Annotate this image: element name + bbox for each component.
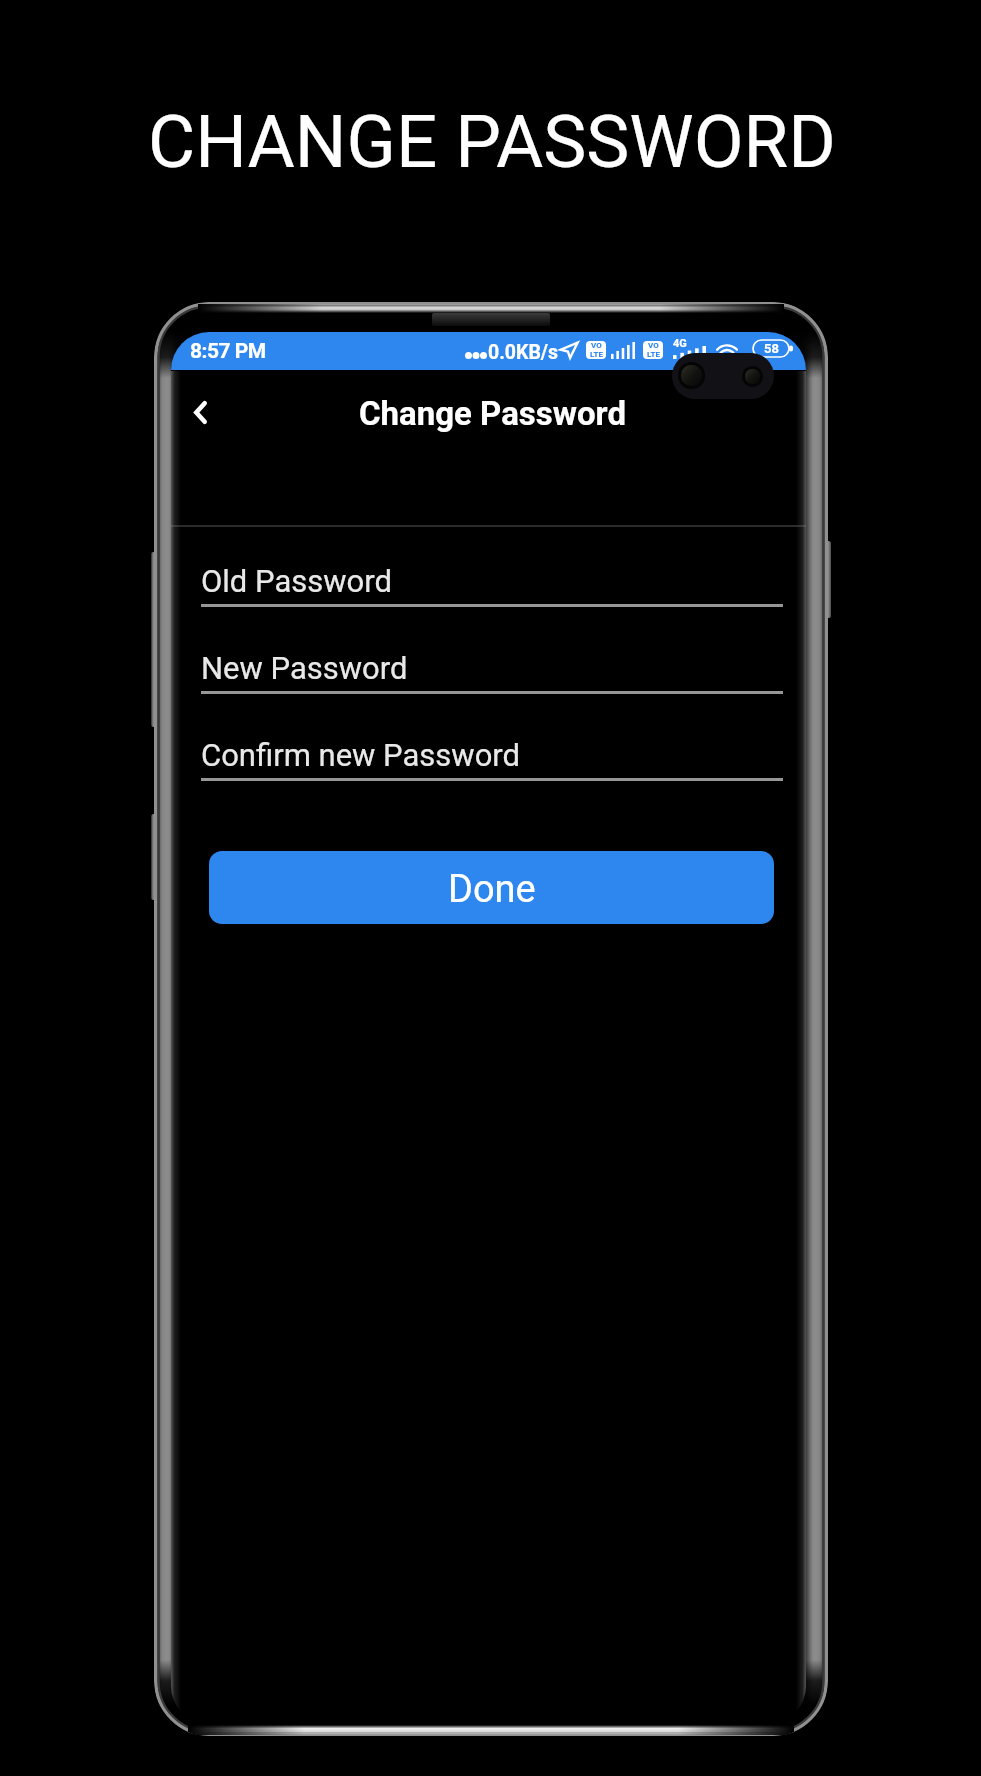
staticText: VO: [648, 341, 659, 350]
button[interactable]: Back: [173, 376, 237, 448]
staticText: 4G: [673, 337, 687, 350]
button[interactable]: New Password: [201, 650, 783, 694]
staticText: LTE: [647, 350, 660, 359]
staticText: LTE: [590, 350, 603, 359]
staticText: 8:57 PM: [190, 339, 266, 364]
staticText: Done: [448, 867, 536, 912]
staticText: Change Password: [359, 394, 626, 433]
button[interactable]: Done: [209, 851, 774, 924]
staticText: VO: [591, 341, 602, 350]
staticText: 0.0KB/s: [488, 341, 559, 364]
staticText: 58: [764, 341, 779, 356]
button[interactable]: Old Password: [201, 563, 783, 607]
staticText: New Password: [201, 650, 408, 686]
staticText: CHANGE PASSWORD: [148, 100, 836, 185]
button[interactable]: Confirm new Password: [201, 737, 783, 781]
staticText: Old Password: [201, 563, 392, 599]
staticText: Confirm new Password: [201, 737, 521, 773]
